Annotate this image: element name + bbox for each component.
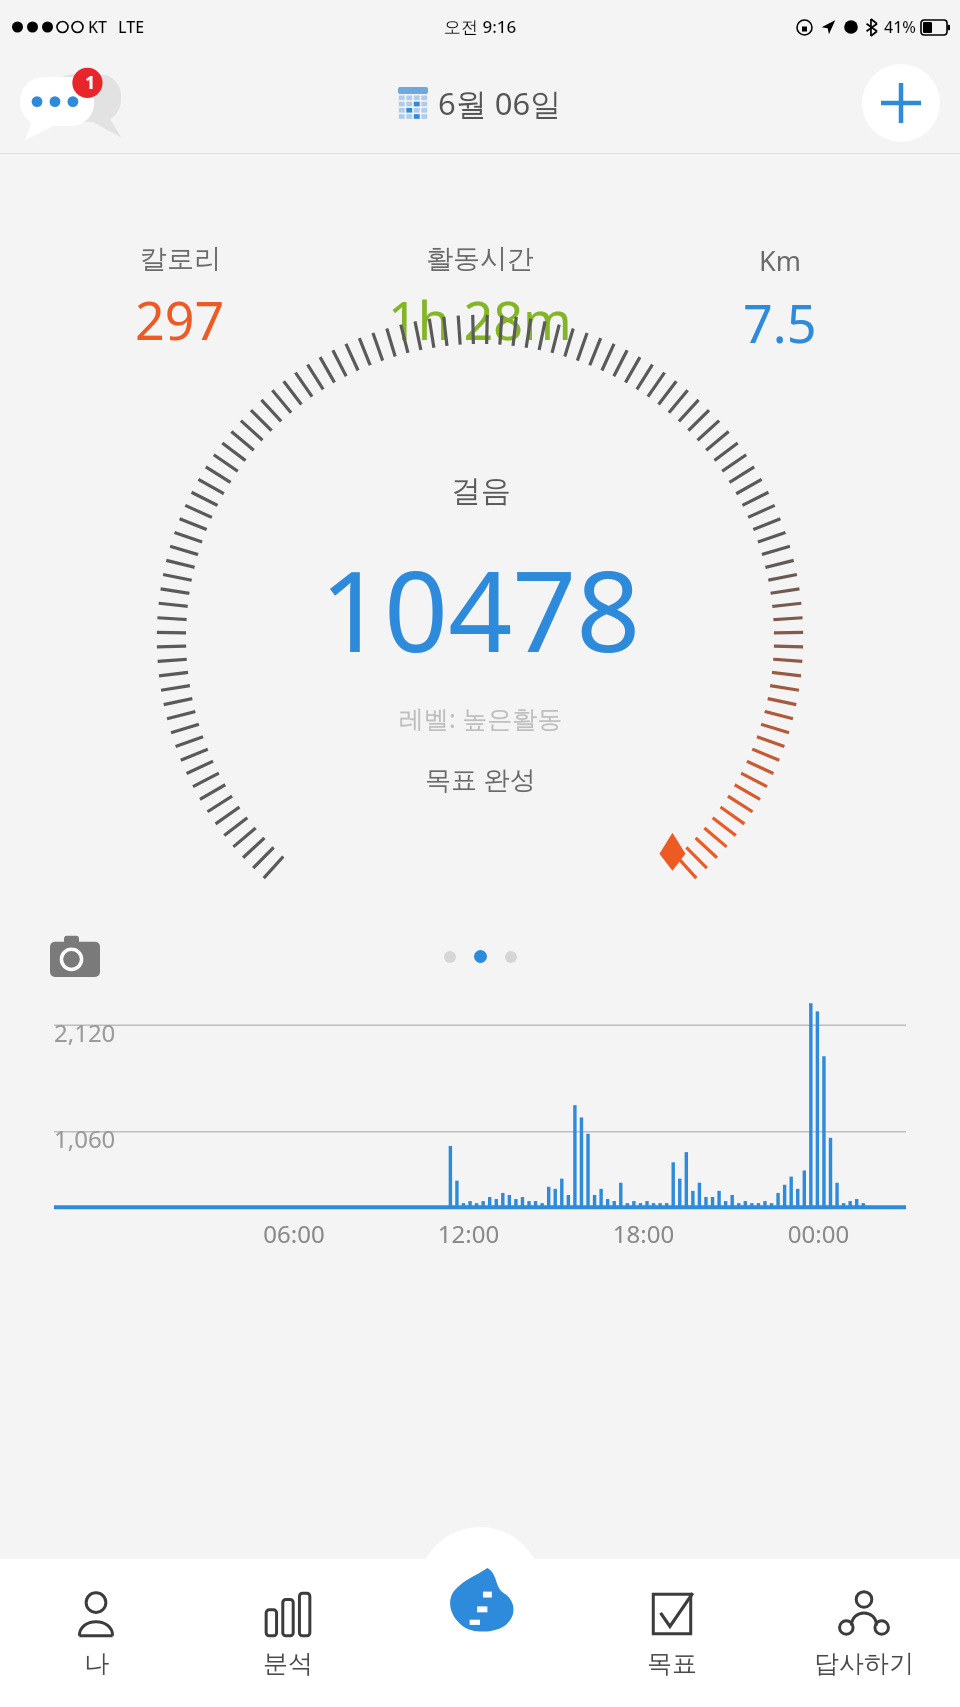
button[interactable]: 6월 06일 xyxy=(398,82,562,124)
staticText: 7.5 xyxy=(743,287,817,358)
button[interactable]: Add xyxy=(862,64,940,142)
staticText: LTE xyxy=(118,16,145,38)
staticText: 걸음 xyxy=(451,472,511,510)
staticText: 활동시간 xyxy=(426,242,534,276)
staticText: 나 xyxy=(84,1648,109,1679)
staticText: 분석 xyxy=(263,1648,313,1679)
staticText: 1 xyxy=(80,71,100,94)
staticText: 10478 xyxy=(320,532,641,685)
staticText: 오전 9:16 xyxy=(444,15,517,38)
staticText: 12:00 xyxy=(381,1217,556,1250)
staticText: 6월 06일 xyxy=(438,82,562,124)
button[interactable]: 답사하기 xyxy=(768,1559,960,1707)
button[interactable]: Camera xyxy=(50,935,100,977)
staticText: 답사하기 xyxy=(814,1648,914,1679)
button[interactable] xyxy=(474,950,487,963)
staticText: 2,120 xyxy=(54,1016,116,1049)
button[interactable]: Km xyxy=(630,242,930,358)
staticText: 41% xyxy=(884,16,916,38)
button[interactable] xyxy=(505,951,517,963)
button[interactable]: Activity xyxy=(418,1527,542,1651)
button[interactable]: 분석 xyxy=(192,1559,384,1707)
staticText: KT xyxy=(88,16,108,38)
button[interactable]: 활동시간 xyxy=(330,242,630,355)
staticText: 목표 완성 xyxy=(425,761,536,797)
button[interactable]: 나 xyxy=(0,1559,192,1707)
staticText: Km xyxy=(759,242,801,279)
button[interactable]: 칼로리 xyxy=(30,242,330,355)
button[interactable]: Messages xyxy=(18,67,130,139)
staticText: 1h 28m xyxy=(388,284,572,355)
staticText: 06:00 xyxy=(207,1217,381,1250)
staticText: 목표 xyxy=(647,1648,697,1679)
staticText: 18:00 xyxy=(556,1217,731,1250)
staticText: 1,060 xyxy=(54,1122,116,1155)
staticText: 297 xyxy=(135,284,225,355)
staticText: 레벨: 높은활동 xyxy=(399,701,563,735)
button[interactable] xyxy=(444,951,456,963)
button[interactable]: 목표 xyxy=(576,1559,768,1707)
staticText: 칼로리 xyxy=(140,242,221,276)
staticText: 00:00 xyxy=(731,1217,906,1250)
